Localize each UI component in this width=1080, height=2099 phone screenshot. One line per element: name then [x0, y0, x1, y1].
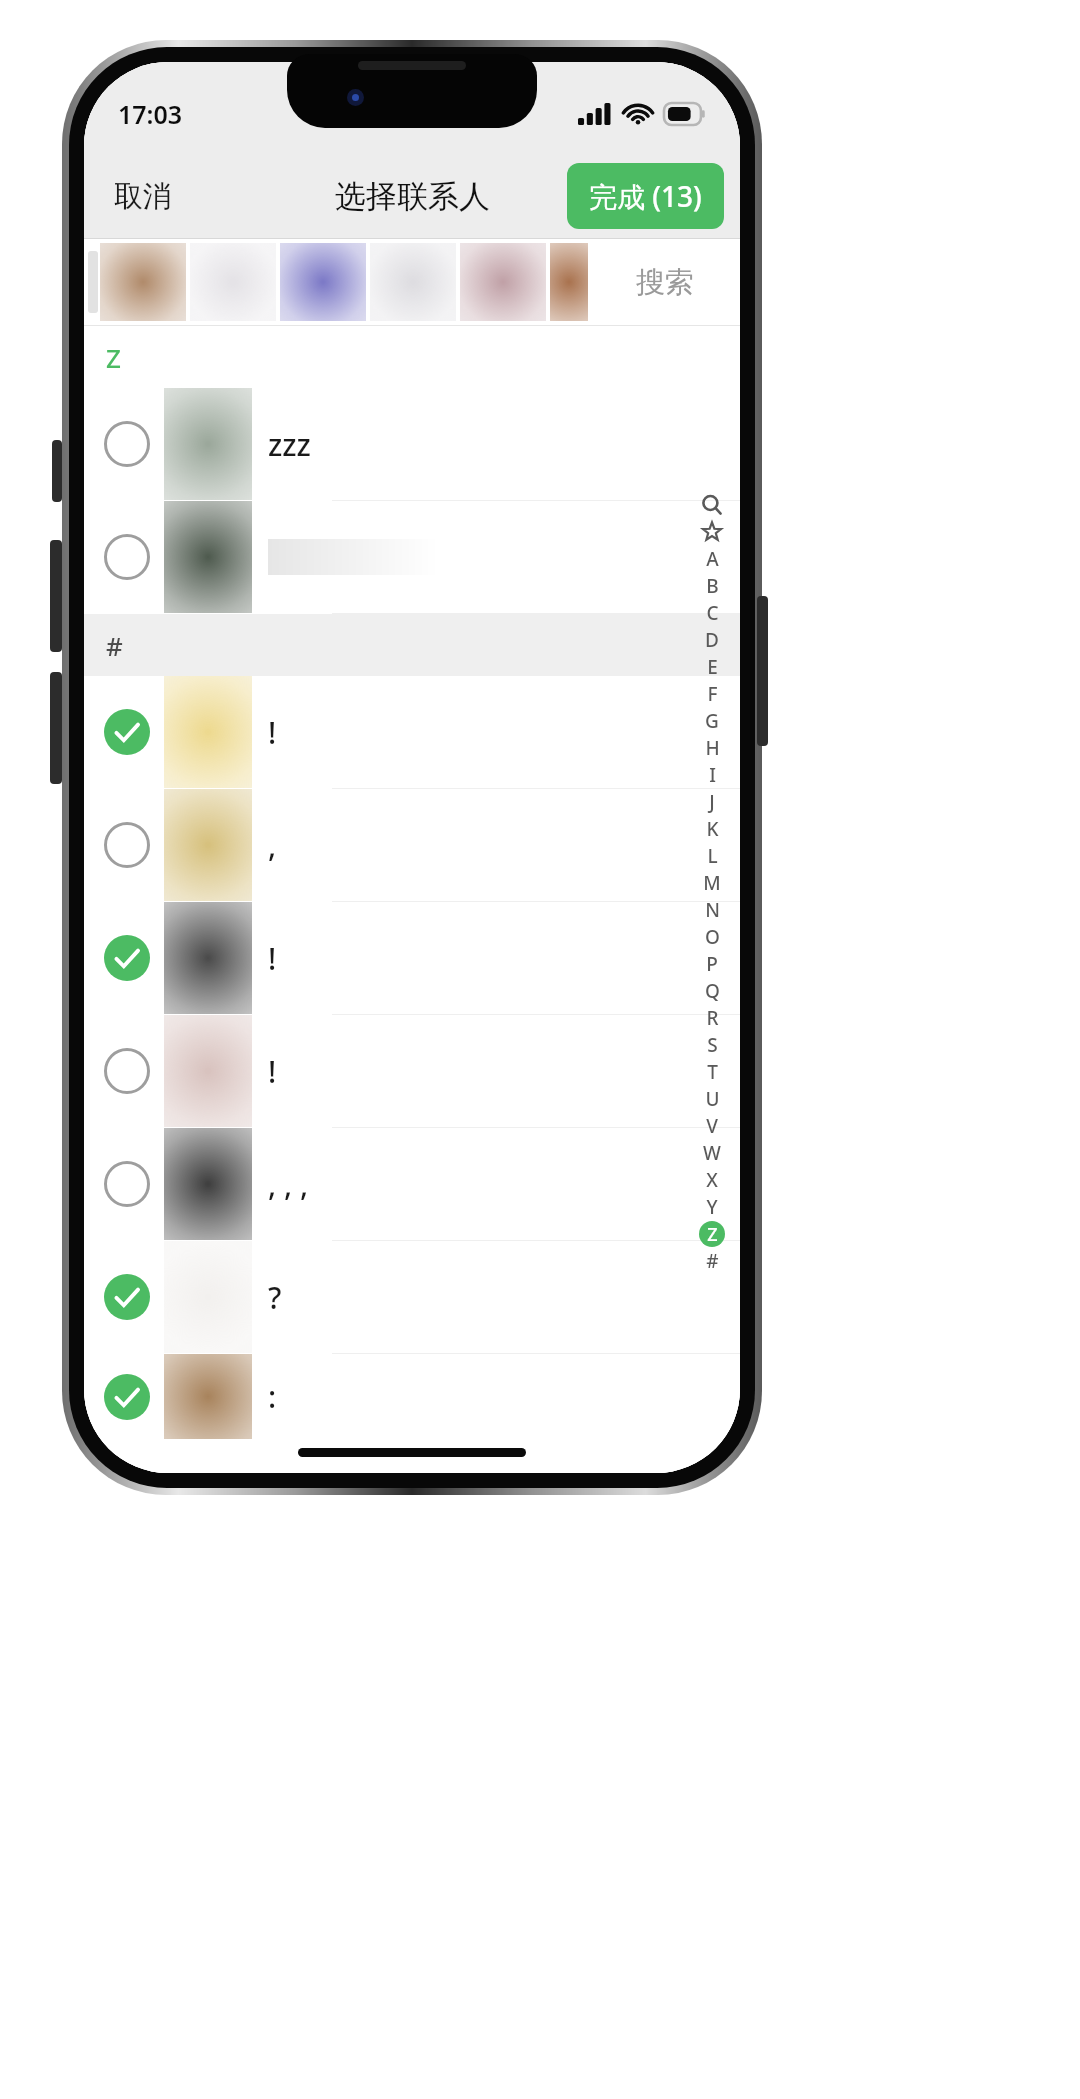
button[interactable]: H	[690, 734, 734, 761]
staticText: zzz	[268, 424, 311, 465]
button[interactable]: P	[690, 950, 734, 977]
button[interactable]: C	[690, 599, 734, 626]
staticText: ?	[268, 1277, 282, 1318]
button[interactable]: , , ,	[84, 1128, 740, 1241]
staticText: 完成 (13)	[589, 177, 702, 215]
staticText: W	[703, 1140, 721, 1166]
button[interactable]: 完成 (13)	[567, 163, 724, 229]
staticText: D	[705, 627, 719, 653]
button[interactable]: F	[690, 680, 734, 707]
button[interactable]: #	[690, 1247, 734, 1274]
button[interactable]: M	[690, 869, 734, 896]
staticText: :	[268, 1376, 277, 1417]
staticText: T	[707, 1059, 718, 1085]
button[interactable]: ,	[84, 789, 740, 902]
staticText: K	[706, 816, 719, 842]
button[interactable]: Q	[690, 977, 734, 1004]
other: Alphabet index	[690, 491, 734, 1274]
staticText: Q	[705, 978, 720, 1004]
staticText: #	[706, 1248, 719, 1274]
button[interactable]: U	[690, 1085, 734, 1112]
staticText: !	[268, 1051, 277, 1092]
button[interactable]: !	[84, 1015, 740, 1128]
button[interactable]: J	[690, 788, 734, 815]
button[interactable]: L	[690, 842, 734, 869]
staticText: I	[709, 762, 716, 788]
button[interactable]: Z	[690, 1220, 734, 1247]
staticText: H	[705, 735, 720, 761]
staticText: 取消	[114, 178, 172, 215]
button[interactable]: 取消	[104, 172, 182, 221]
button[interactable]: T	[690, 1058, 734, 1085]
staticText: V	[706, 1113, 718, 1139]
button[interactable]: S	[690, 1031, 734, 1058]
button[interactable]: W	[690, 1139, 734, 1166]
staticText: R	[706, 1005, 719, 1031]
button[interactable]: E	[690, 653, 734, 680]
staticText: G	[705, 708, 719, 734]
staticText: 搜索	[636, 264, 694, 301]
staticText: Z	[106, 340, 121, 375]
button[interactable]: V	[690, 1112, 734, 1139]
button[interactable]: N	[690, 896, 734, 923]
button[interactable]: !	[84, 902, 740, 1015]
button[interactable]: Selected contacts	[98, 239, 590, 325]
staticText: O	[705, 924, 720, 950]
staticText: P	[706, 951, 718, 977]
staticText: A	[706, 546, 719, 572]
button[interactable]: !	[84, 676, 740, 789]
button[interactable]: I	[690, 761, 734, 788]
staticText: X	[706, 1167, 718, 1193]
button[interactable]: ?	[84, 1241, 740, 1354]
button[interactable]: :	[84, 1354, 740, 1439]
button[interactable]: Search	[690, 491, 734, 518]
staticText: !	[268, 938, 277, 979]
staticText: Z	[707, 1222, 718, 1247]
button[interactable]: O	[690, 923, 734, 950]
button[interactable]: zzz	[84, 388, 740, 501]
staticText: M	[703, 870, 721, 896]
staticText: N	[705, 897, 720, 923]
button[interactable]: Starred	[690, 518, 734, 545]
staticText: Y	[706, 1194, 718, 1220]
staticText: S	[707, 1032, 718, 1058]
staticText: L	[707, 843, 718, 869]
staticText: , , ,	[268, 1164, 309, 1205]
staticText: F	[707, 681, 718, 707]
staticText: 选择联系人	[335, 177, 490, 216]
staticText: #	[106, 628, 123, 663]
staticText: 17:03	[118, 97, 183, 131]
staticText: U	[705, 1086, 720, 1112]
button[interactable]: A	[690, 545, 734, 572]
staticText: E	[707, 654, 718, 680]
button[interactable]: B	[690, 572, 734, 599]
staticText: J	[709, 789, 715, 815]
button[interactable]: D	[690, 626, 734, 653]
button[interactable]: R	[690, 1004, 734, 1031]
staticText: ,	[268, 825, 277, 866]
button[interactable]: G	[690, 707, 734, 734]
button[interactable]: K	[690, 815, 734, 842]
staticText: !	[268, 712, 277, 753]
button[interactable]: Y	[690, 1193, 734, 1220]
staticText: C	[706, 600, 719, 626]
staticText: B	[706, 573, 719, 599]
button[interactable]: X	[690, 1166, 734, 1193]
button[interactable]: 搜索	[590, 239, 740, 325]
button[interactable]	[84, 501, 740, 614]
